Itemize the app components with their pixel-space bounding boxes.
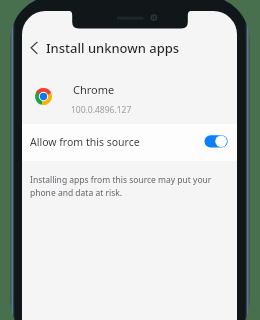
staticText: 100.0.4896.127 [71, 104, 132, 116]
button[interactable]: Navigate up [22, 34, 48, 62]
staticText: Installing apps from this source may put… [30, 174, 214, 198]
staticText: Allow from this source [30, 135, 140, 149]
button[interactable]: Allow from this source [22, 124, 237, 161]
staticText: Chrome [73, 82, 115, 97]
staticText: Install unknown apps [46, 39, 180, 57]
